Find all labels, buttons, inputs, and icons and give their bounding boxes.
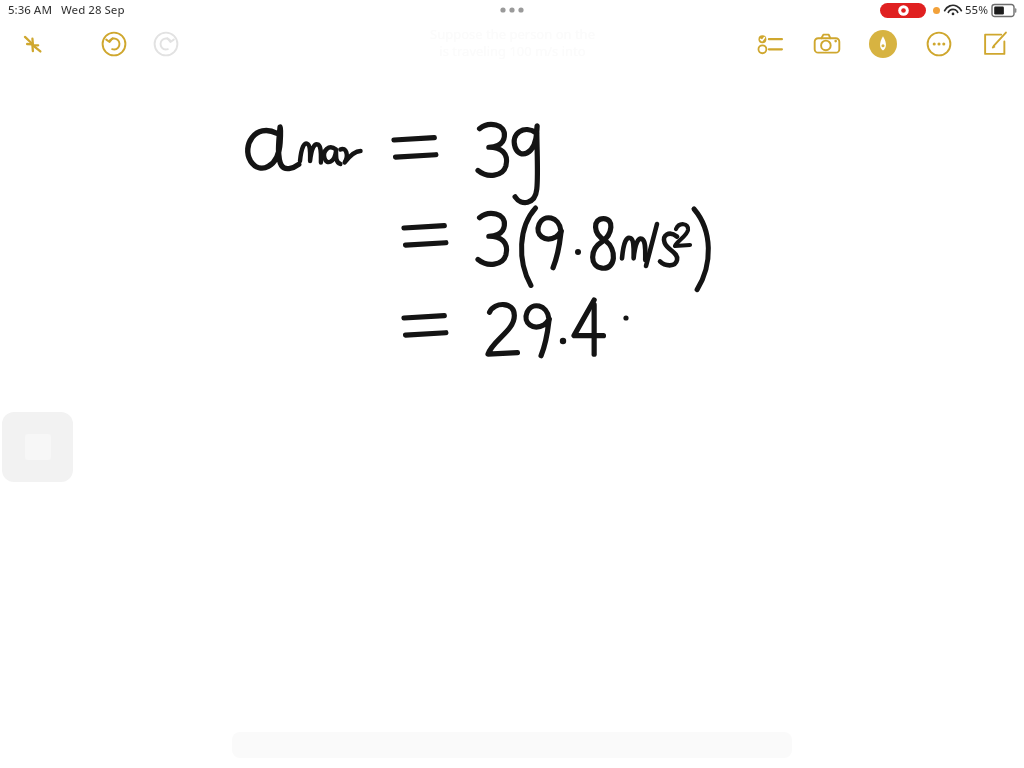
staticText: Wed 28 Sep [61,2,125,18]
staticText: 5:36 AM [8,2,52,18]
button[interactable]: Redo [143,24,189,64]
button[interactable]: More options [916,24,962,64]
button[interactable]: Checklist [748,24,794,64]
button[interactable]: Undo [91,24,137,64]
button[interactable]: New note [972,24,1018,64]
button[interactable]: Collapse [9,24,55,64]
staticText: 55% [965,2,988,18]
button[interactable]: Pen tool [860,24,906,64]
button[interactable]: Camera [804,24,850,64]
